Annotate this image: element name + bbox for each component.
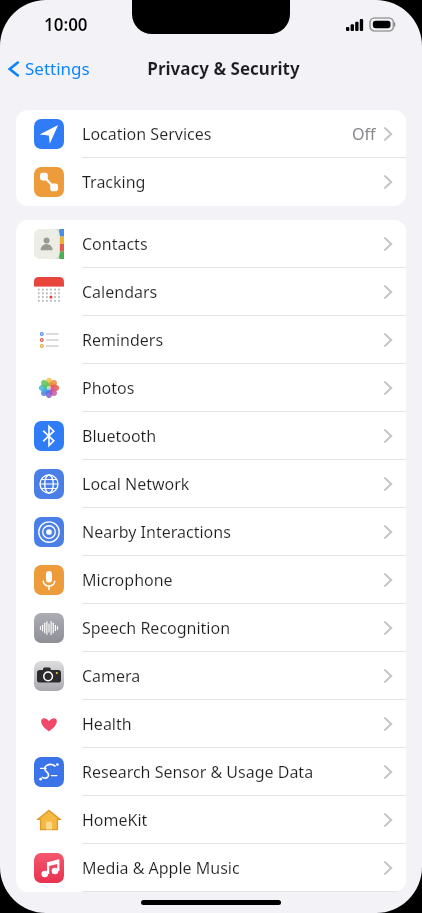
staticText: Research Sensor & Usage Data	[82, 761, 384, 783]
button[interactable]: Microphone	[16, 556, 406, 604]
staticText: Privacy & Security	[147, 57, 300, 80]
staticText: Speech Recognition	[82, 617, 384, 639]
button[interactable]: Nearby Interactions	[16, 508, 406, 556]
button[interactable]: Settings	[0, 53, 98, 84]
button[interactable]: Photos	[16, 364, 406, 412]
staticText: Contacts	[82, 233, 384, 255]
button[interactable]: Research Sensor & Usage Data	[16, 748, 406, 796]
button[interactable]: Bluetooth	[16, 412, 406, 460]
button[interactable]: Contacts	[16, 220, 406, 268]
button[interactable]: HomeKit	[16, 796, 406, 844]
staticText: Off	[352, 123, 376, 145]
button[interactable]: Media & Apple Music	[16, 844, 406, 892]
button[interactable]: Location Services	[16, 110, 406, 158]
button[interactable]: Speech Recognition	[16, 604, 406, 652]
staticText: 10:00	[44, 13, 88, 36]
staticText: Nearby Interactions	[82, 521, 384, 543]
button[interactable]: Local Network	[16, 460, 406, 508]
staticText: Media & Apple Music	[82, 857, 384, 879]
staticText: Photos	[82, 377, 384, 399]
staticText: Location Services	[82, 123, 352, 145]
staticText: Camera	[82, 665, 384, 687]
staticText: Settings	[25, 57, 90, 80]
staticText: Microphone	[82, 569, 384, 591]
staticText: HomeKit	[82, 809, 384, 831]
button[interactable]: Tracking	[16, 158, 406, 206]
staticText: Local Network	[82, 473, 384, 495]
staticText: Tracking	[82, 171, 384, 193]
button[interactable]: Calendars	[16, 268, 406, 316]
button[interactable]: Camera	[16, 652, 406, 700]
staticText: Health	[82, 713, 384, 735]
button[interactable]: Health	[16, 700, 406, 748]
staticText: Bluetooth	[82, 425, 384, 447]
button[interactable]: Reminders	[16, 316, 406, 364]
staticText: Calendars	[82, 281, 384, 303]
staticText: Reminders	[82, 329, 384, 351]
